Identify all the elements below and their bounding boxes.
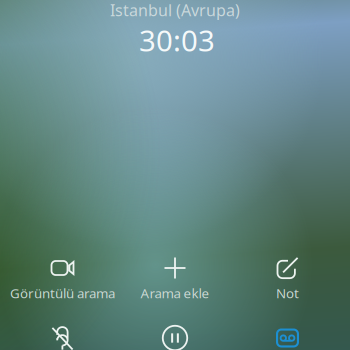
button[interactable]: Not — [231, 254, 343, 302]
button[interactable]: Sesi kapat — [32, 322, 92, 350]
staticText: Görüntülü arama — [10, 284, 115, 302]
button[interactable]: Beklet — [145, 322, 205, 350]
staticText: Arama ekle — [140, 284, 209, 302]
button[interactable]: Görüntülü arama — [6, 254, 118, 302]
staticText: Istanbul (Avrupa) — [110, 0, 240, 21]
staticText: 30:03 — [139, 20, 215, 59]
button[interactable]: Sesli mesaj — [257, 322, 317, 350]
staticText: Not — [276, 284, 299, 302]
button[interactable]: Arama ekle — [119, 254, 231, 302]
